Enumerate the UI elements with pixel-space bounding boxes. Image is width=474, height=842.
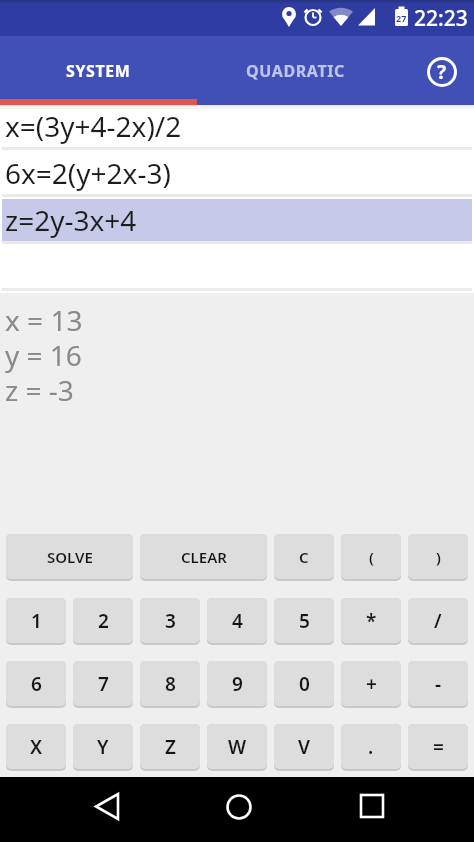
staticText: X <box>30 734 43 760</box>
button[interactable]: V <box>274 724 334 771</box>
button[interactable] <box>316 777 474 842</box>
staticText: ? <box>437 59 447 85</box>
staticText: Y <box>97 734 109 760</box>
button[interactable] <box>0 777 158 842</box>
staticText: 0 <box>299 671 310 697</box>
staticText: = <box>433 734 444 760</box>
button[interactable]: CLEAR <box>140 534 267 581</box>
button[interactable]: * <box>341 598 401 645</box>
button[interactable]: 2 <box>73 598 133 645</box>
button[interactable]: + <box>341 661 401 708</box>
button[interactable]: = <box>408 724 468 771</box>
staticText: Z <box>165 734 176 760</box>
button[interactable]: x=(3y+4-2x)/2 <box>0 105 474 152</box>
staticText: 6 <box>31 671 42 697</box>
button[interactable]: 6x=2(y+2x-3) <box>0 152 474 199</box>
button[interactable]: - <box>408 661 468 708</box>
staticText: / <box>434 608 442 634</box>
button[interactable]: C <box>274 534 334 581</box>
button[interactable]: Y <box>73 724 133 771</box>
button[interactable]: X <box>6 724 66 771</box>
staticText: SYSTEM <box>66 60 131 82</box>
staticText: 7 <box>98 671 109 697</box>
staticText: 22:23 <box>414 4 468 33</box>
staticText: 9 <box>232 671 243 697</box>
staticText: 4 <box>232 608 243 634</box>
staticText: 1 <box>31 608 42 634</box>
button[interactable]: W <box>207 724 267 771</box>
staticText: z=2y-3x+4 <box>5 201 137 239</box>
button[interactable] <box>0 246 474 293</box>
staticText: 6x=2(y+2x-3) <box>5 154 171 192</box>
staticText: - <box>435 671 442 697</box>
staticText: x = 13 <box>5 301 83 339</box>
button[interactable]: 5 <box>274 598 334 645</box>
button[interactable]: / <box>408 598 468 645</box>
button[interactable]: 8 <box>140 661 200 708</box>
staticText: SOLVE <box>47 547 93 567</box>
staticText: QUADRATIC <box>246 60 345 82</box>
button[interactable]: SYSTEM <box>0 36 197 105</box>
staticText: 27 <box>396 12 407 24</box>
button[interactable] <box>158 777 316 842</box>
staticText: * <box>366 608 377 634</box>
button[interactable]: SOLVE <box>6 534 133 581</box>
button[interactable]: ) <box>408 534 468 581</box>
staticText: C <box>299 547 309 567</box>
button[interactable]: QUADRATIC <box>197 36 394 105</box>
button[interactable]: 3 <box>140 598 200 645</box>
button[interactable]: 7 <box>73 661 133 708</box>
button[interactable]: ( <box>341 534 401 581</box>
staticText: ( <box>369 547 374 567</box>
button[interactable]: ? <box>427 57 457 87</box>
button[interactable]: 4 <box>207 598 267 645</box>
staticText: W <box>228 734 247 760</box>
staticText: 2 <box>98 608 109 634</box>
button[interactable]: 9 <box>207 661 267 708</box>
staticText: V <box>298 734 310 760</box>
staticText: + <box>366 671 377 697</box>
staticText: 3 <box>165 608 176 634</box>
staticText: . <box>368 734 374 760</box>
button[interactable]: 1 <box>6 598 66 645</box>
staticText: 5 <box>299 608 310 634</box>
button[interactable]: z=2y-3x+4 <box>0 199 474 246</box>
staticText: x=(3y+4-2x)/2 <box>5 107 182 145</box>
staticText: CLEAR <box>181 547 227 567</box>
button[interactable]: Z <box>140 724 200 771</box>
staticText: 8 <box>165 671 176 697</box>
button[interactable]: 0 <box>274 661 334 708</box>
button[interactable]: 6 <box>6 661 66 708</box>
staticText: y = 16 <box>5 336 82 374</box>
staticText: z = -3 <box>5 371 74 409</box>
button[interactable]: . <box>341 724 401 771</box>
staticText: ) <box>436 547 441 567</box>
